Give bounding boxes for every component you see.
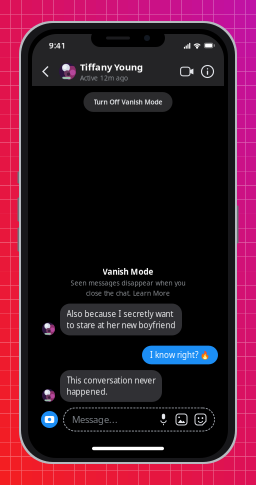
button[interactable]: Stickers xyxy=(191,414,210,425)
button[interactable]: Turn Off Vanish Mode xyxy=(83,92,172,112)
staticText: Turn Off Vanish Mode xyxy=(93,98,162,106)
staticText: Tiffany Young xyxy=(80,61,143,73)
button[interactable]: Conversation info xyxy=(198,60,217,83)
staticText: I know right? xyxy=(150,350,198,360)
button[interactable]: Tiffany Young xyxy=(52,61,156,82)
staticText: Also because I secretly want xyxy=(66,309,173,319)
button[interactable]: Video call xyxy=(177,60,198,83)
staticText: Message... xyxy=(72,413,118,426)
staticText: to stare at her new boyfriend xyxy=(66,320,175,330)
staticText: Active 12m ago xyxy=(80,73,128,82)
button[interactable]: Camera xyxy=(41,411,58,428)
staticText: Vanish Mode xyxy=(102,266,153,277)
button[interactable]: Record voice message xyxy=(155,414,172,425)
button[interactable]: Photos xyxy=(172,414,191,425)
staticText: 🔥 xyxy=(200,350,210,359)
staticText: Seen messages disappear when you xyxy=(70,278,185,287)
staticText: 9:41 xyxy=(49,40,66,51)
staticText: close the chat. Learn More xyxy=(86,289,170,298)
button[interactable]: Back xyxy=(39,60,52,82)
staticText: This conversation never xyxy=(66,375,155,386)
staticText: happened. xyxy=(66,386,107,397)
